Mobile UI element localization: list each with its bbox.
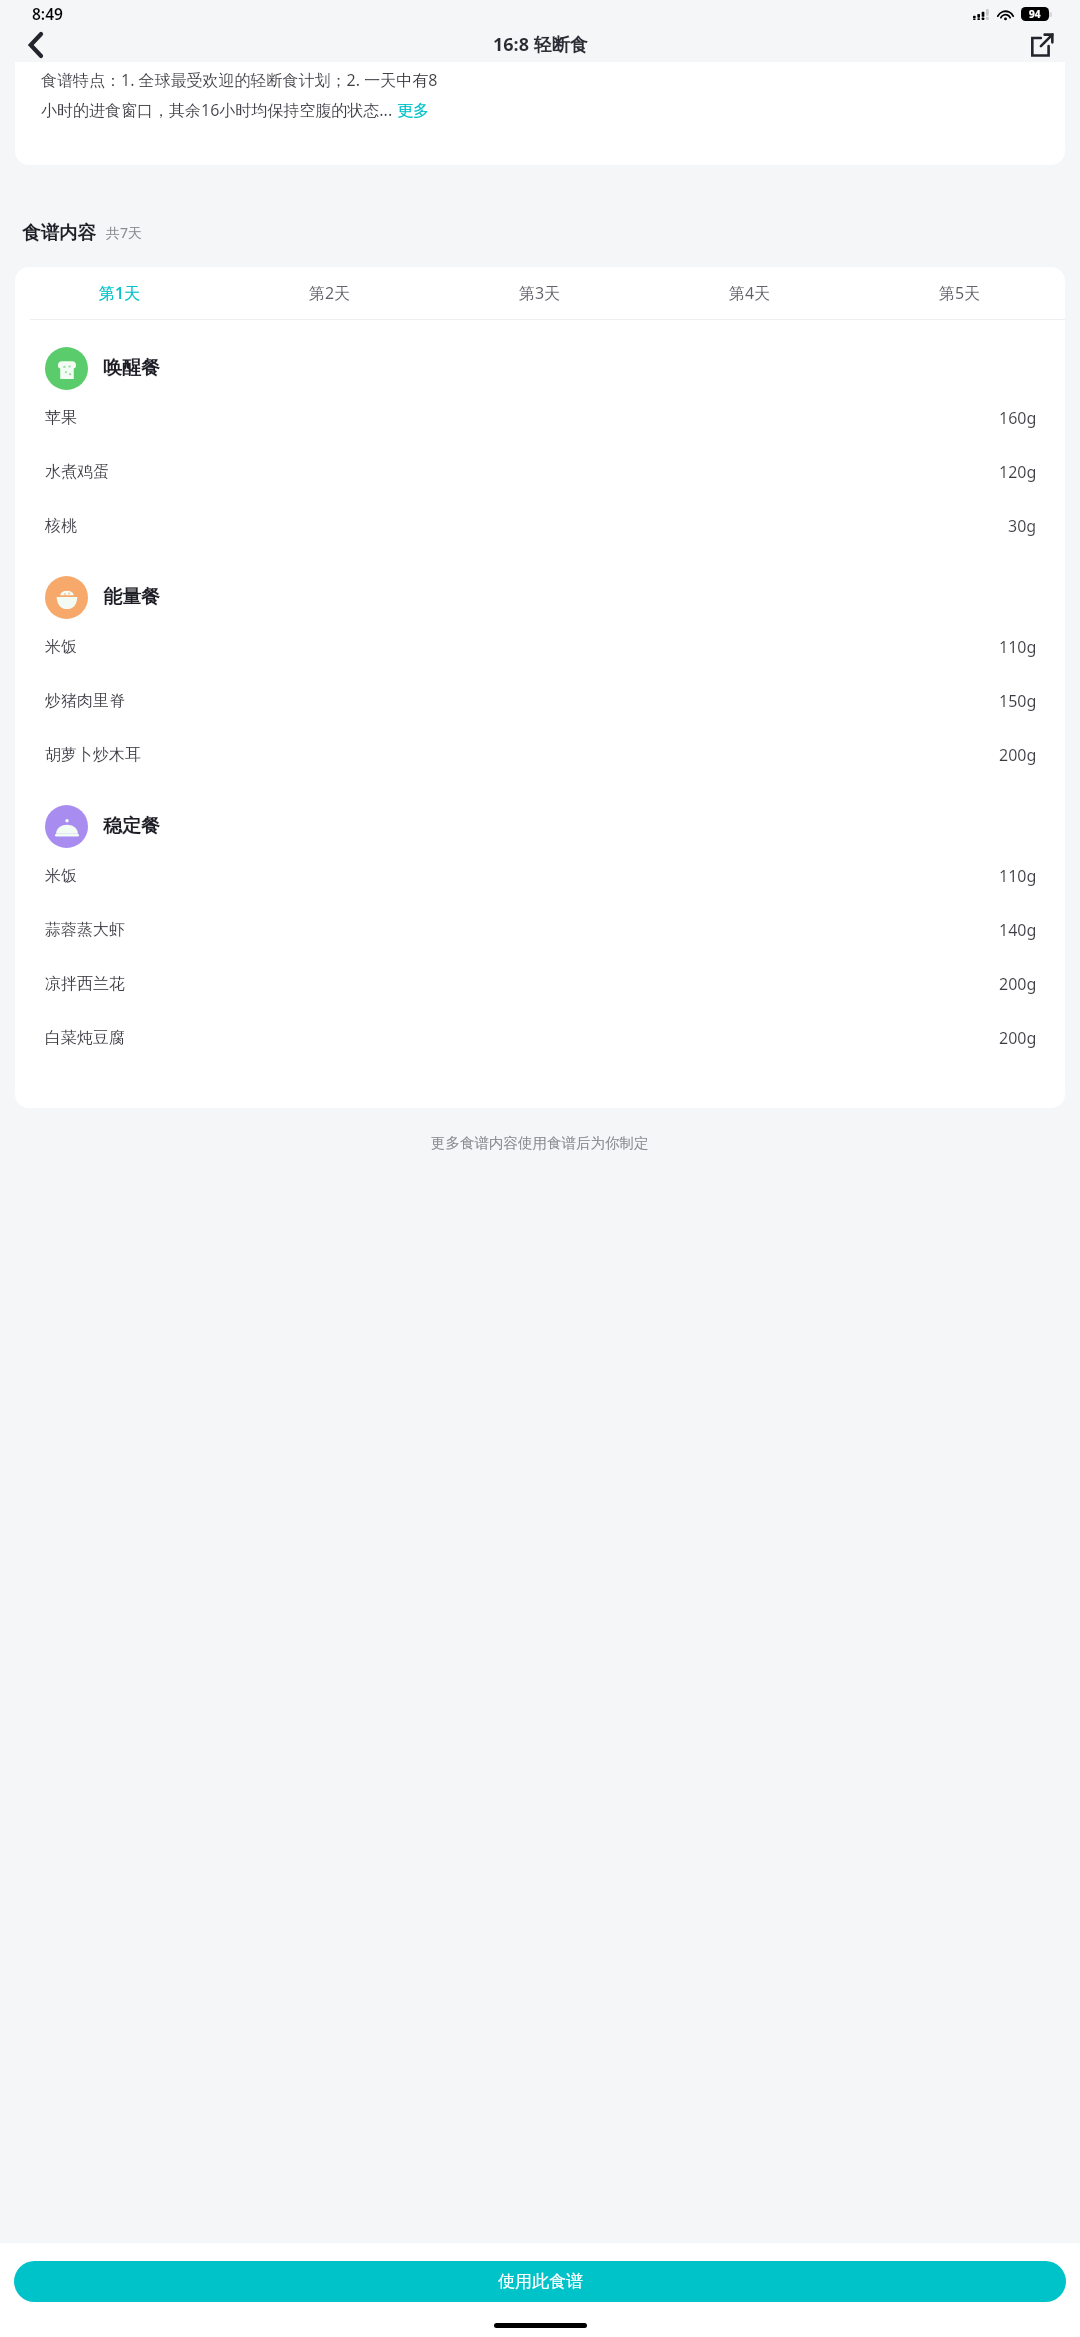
staticText: 第2天: [309, 282, 351, 304]
button[interactable]: 炒猪肉里脊: [15, 674, 1065, 728]
staticText: 唤醒餐: [103, 356, 160, 380]
staticText: 米饭: [45, 866, 999, 886]
staticText: 16:8 轻断食: [493, 32, 588, 57]
button[interactable]: 第3天: [435, 267, 645, 319]
staticText: 更多食谱内容使用食谱后为你制定: [431, 1134, 649, 1152]
staticText: 能量餐: [103, 585, 160, 609]
button[interactable]: 米饭: [15, 849, 1065, 903]
staticText: 200g: [999, 744, 1037, 766]
staticText: 白菜炖豆腐: [45, 1028, 999, 1048]
button[interactable]: 蒜蓉蒸大虾: [15, 903, 1065, 957]
staticText: 稳定餐: [103, 814, 160, 838]
button[interactable]: 第2天: [225, 267, 435, 319]
staticText: 水煮鸡蛋: [45, 462, 999, 482]
staticText: 150g: [999, 690, 1037, 712]
staticText: 苹果: [45, 408, 999, 428]
button[interactable]: 第1天: [15, 267, 225, 319]
staticText: 30g: [1008, 515, 1037, 537]
staticText: 160g: [999, 407, 1037, 429]
staticText: 110g: [999, 865, 1037, 887]
button[interactable]: Share: [1020, 27, 1064, 62]
staticText: 第3天: [519, 282, 561, 304]
staticText: 120g: [999, 461, 1037, 483]
staticText: 蒜蓉蒸大虾: [45, 920, 999, 940]
staticText: 200g: [999, 1027, 1037, 1049]
staticText: 140g: [999, 919, 1037, 941]
staticText: 第1天: [99, 282, 141, 304]
staticText: 凉拌西兰花: [45, 974, 999, 994]
staticText: 核桃: [45, 516, 1008, 536]
staticText: 胡萝卜炒木耳: [45, 745, 999, 765]
staticText: 使用此食谱: [498, 2271, 583, 2292]
button[interactable]: 苹果: [15, 391, 1065, 445]
button[interactable]: 更多: [397, 101, 429, 121]
button[interactable]: Back: [14, 27, 58, 62]
staticText: 炒猪肉里脊: [45, 691, 999, 711]
staticText: 第4天: [729, 282, 771, 304]
button[interactable]: 凉拌西兰花: [15, 957, 1065, 1011]
button[interactable]: 第4天: [645, 267, 855, 319]
staticText: 米饭: [45, 637, 999, 657]
button[interactable]: 水煮鸡蛋: [15, 445, 1065, 499]
button[interactable]: 米饭: [15, 620, 1065, 674]
staticText: 食谱内容: [22, 221, 96, 244]
staticText: 第5天: [939, 282, 981, 304]
staticText: 食谱特点：1. 全球最受欢迎的轻断食计划；2. 一天中有8: [41, 69, 438, 91]
staticText: 共7天: [106, 223, 143, 242]
button[interactable]: 第5天: [855, 267, 1065, 319]
button[interactable]: 胡萝卜炒木耳: [15, 728, 1065, 782]
staticText: 小时的进食窗口，其余16小时均保持空腹的状态...: [41, 99, 393, 121]
button[interactable]: 核桃: [15, 499, 1065, 553]
staticText: 200g: [999, 973, 1037, 995]
button[interactable]: 白菜炖豆腐: [15, 1011, 1065, 1065]
staticText: 更多: [397, 101, 429, 121]
staticText: 8:49: [32, 3, 63, 24]
staticText: 110g: [999, 636, 1037, 658]
staticText: 94: [1029, 7, 1041, 21]
button[interactable]: 使用此食谱: [14, 2261, 1066, 2302]
